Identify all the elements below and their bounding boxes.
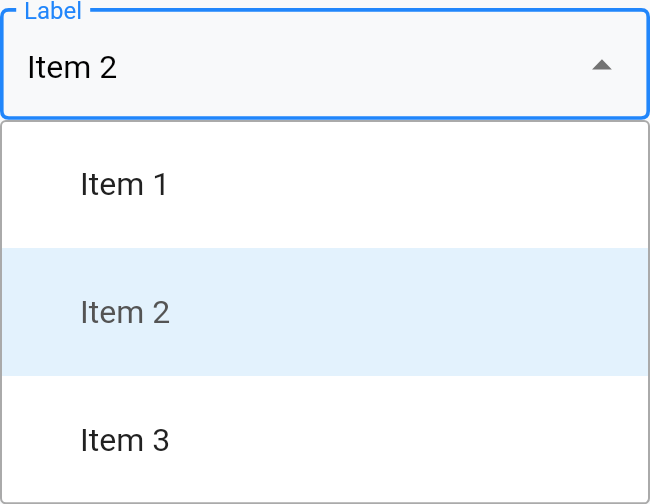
button[interactable]: Collapse dropdown xyxy=(578,40,626,88)
staticText: Item 1 xyxy=(80,165,171,203)
staticText: Item 2 xyxy=(27,48,118,86)
button[interactable]: Item 2 xyxy=(0,248,650,376)
button[interactable]: Item 1 xyxy=(0,120,650,248)
staticText: Item 3 xyxy=(80,421,171,459)
staticText: Label xyxy=(24,0,83,25)
button[interactable]: Item 3 xyxy=(0,376,650,504)
staticText: Item 2 xyxy=(80,293,171,331)
button[interactable]: Label xyxy=(0,0,650,120)
